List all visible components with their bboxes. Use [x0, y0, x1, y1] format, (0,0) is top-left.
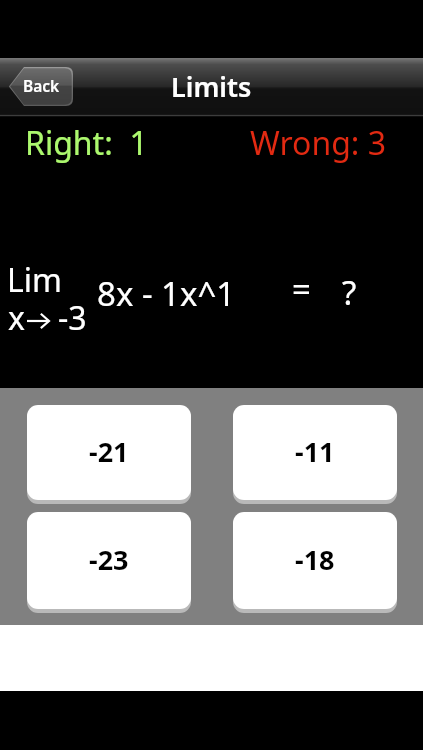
staticText: ?	[342, 270, 357, 315]
staticText: -21	[89, 433, 129, 470]
button[interactable]: -18	[233, 512, 397, 609]
staticText: 8x - 1x^1	[97, 271, 236, 316]
staticText: Wrong: 3	[250, 121, 387, 165]
staticText: =	[292, 266, 311, 311]
button[interactable]: Back	[8, 67, 73, 106]
button[interactable]: -11	[233, 405, 397, 500]
staticText: -18	[295, 541, 335, 578]
staticText: -11	[295, 433, 335, 470]
staticText: Right: 1	[25, 121, 148, 165]
staticText: x	[8, 296, 25, 340]
staticText: Back	[23, 75, 60, 96]
staticText: Lim	[7, 258, 62, 302]
button[interactable]: -21	[27, 405, 191, 500]
button[interactable]: -23	[27, 512, 191, 609]
staticText: -23	[89, 541, 129, 578]
staticText: Limits	[171, 68, 252, 105]
staticText: -3	[58, 296, 87, 340]
